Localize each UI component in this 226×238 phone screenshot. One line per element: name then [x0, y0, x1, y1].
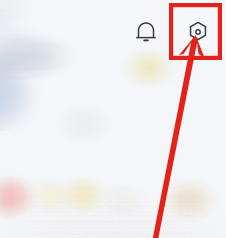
button[interactable]: Notifications	[131, 19, 161, 49]
button[interactable]: Settings	[183, 16, 213, 46]
